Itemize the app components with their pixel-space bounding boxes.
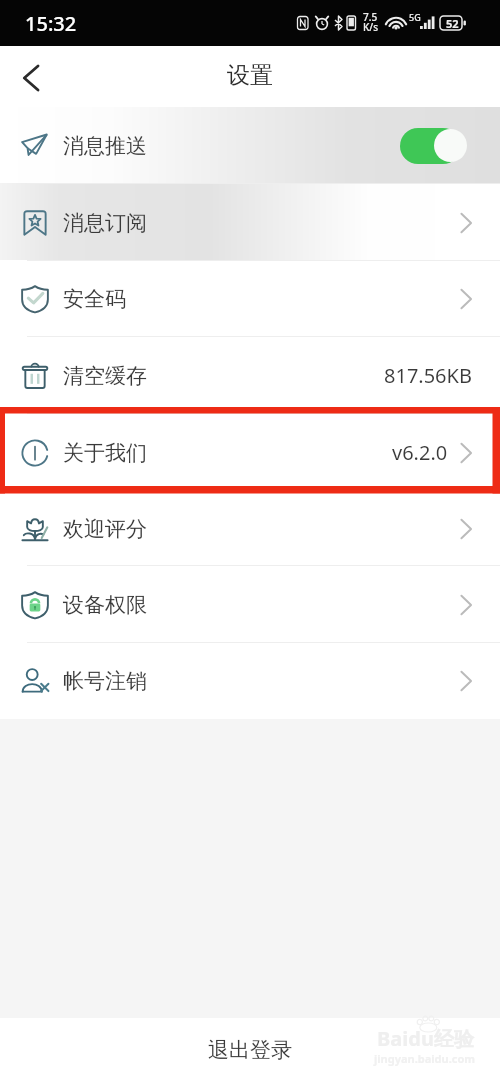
staticText: 帐号注销 <box>63 668 147 694</box>
button[interactable]: 帐号注销 <box>0 643 500 719</box>
staticText: 设置 <box>227 61 273 90</box>
staticText: 清空缓存 <box>63 363 147 389</box>
staticText: 5G <box>409 11 421 23</box>
staticText: v6.2.0 <box>392 439 448 466</box>
staticText: K/s <box>363 20 379 34</box>
button[interactable]: 欢迎评分 <box>0 491 500 566</box>
staticText: 欢迎评分 <box>63 516 147 542</box>
button[interactable]: Back <box>2 49 60 107</box>
staticText: Baidu经验 <box>377 1025 474 1052</box>
button[interactable]: 设备权限 <box>0 566 500 643</box>
button[interactable]: 退出登录 <box>0 1018 500 1084</box>
button[interactable]: 消息订阅 <box>0 184 500 261</box>
button[interactable]: 消息推送 <box>0 107 500 184</box>
staticText: 52 <box>446 16 459 31</box>
staticText: 退出登录 <box>208 1037 292 1063</box>
button[interactable]: 清空缓存 <box>0 337 500 414</box>
staticText: 7.5 <box>363 10 378 24</box>
staticText: jingyan.baidu.com <box>374 1051 476 1066</box>
staticText: 安全码 <box>63 286 126 312</box>
staticText: 15:32 <box>25 10 77 37</box>
button[interactable]: 安全码 <box>0 261 500 337</box>
staticText: 消息推送 <box>63 133 147 159</box>
staticText: 设备权限 <box>63 592 147 618</box>
button[interactable]: 关于我们 <box>0 414 500 491</box>
staticText: 817.56KB <box>384 362 472 389</box>
staticText: 关于我们 <box>63 440 147 466</box>
staticText: 消息订阅 <box>63 210 147 236</box>
